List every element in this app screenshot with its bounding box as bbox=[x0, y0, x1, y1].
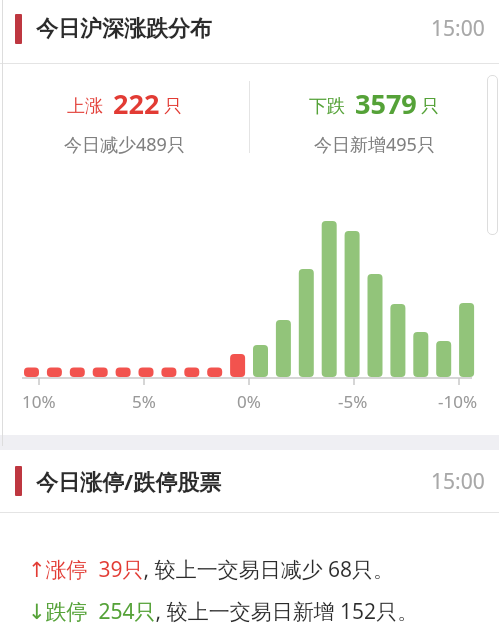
staticText: 15:00 bbox=[431, 467, 485, 496]
staticText: ↑涨停 39只, 较上一交易日减少 68只。 bbox=[28, 555, 395, 584]
button[interactable]: ↑涨停 39只, 较上一交易日减少 68只。 bbox=[0, 555, 499, 584]
staticText: 5% bbox=[132, 390, 156, 413]
staticText: 今日沪深涨跌分布 bbox=[36, 15, 212, 43]
staticText: -5% bbox=[338, 390, 368, 413]
staticText: 只 bbox=[421, 95, 439, 118]
staticText: 今日涨停/跌停股票 bbox=[36, 466, 222, 496]
staticText: 222 bbox=[113, 85, 160, 122]
staticText: 15:00 bbox=[431, 14, 485, 43]
staticText: -10% bbox=[438, 390, 478, 413]
button[interactable]: 今日沪深涨跌分布 bbox=[0, 0, 499, 63]
button[interactable]: ↓跌停 254只, 较上一交易日新增 152只。 bbox=[0, 597, 499, 626]
staticText: 上涨 bbox=[67, 95, 103, 118]
button[interactable]: 今日涨停/跌停股票 bbox=[0, 450, 499, 512]
staticText: 3579 bbox=[355, 85, 417, 122]
staticText: 0% bbox=[237, 390, 261, 413]
staticText: 今日新增495只 bbox=[314, 132, 435, 157]
staticText: 只 bbox=[164, 95, 182, 118]
staticText: 10% bbox=[22, 390, 56, 413]
staticText: 下跌 bbox=[309, 95, 345, 118]
staticText: ↓跌停 254只, 较上一交易日新增 152只。 bbox=[28, 597, 419, 626]
staticText: 今日减少489只 bbox=[64, 132, 185, 157]
